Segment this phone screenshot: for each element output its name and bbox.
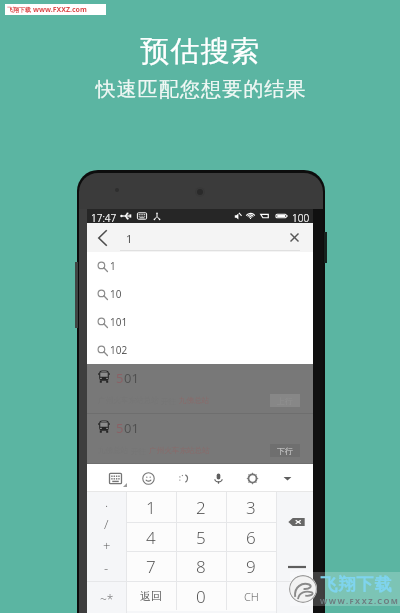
- staticText: /: [104, 515, 109, 533]
- staticText: .: [105, 493, 109, 511]
- staticText: 九佛总站: [179, 396, 210, 406]
- button[interactable]: 7: [126, 551, 176, 581]
- button[interactable]: 9: [226, 551, 276, 581]
- staticText: 101: [110, 315, 128, 329]
- staticText: 广州火车东站总站: [149, 446, 210, 456]
- staticText: +: [103, 537, 111, 555]
- button[interactable]: 返回: [126, 581, 176, 611]
- staticText: 5: [116, 419, 124, 434]
- staticText: WWW.FXXZ.COM: [320, 596, 400, 606]
- button[interactable]: 5: [176, 522, 226, 552]
- button[interactable]: 0: [176, 581, 226, 611]
- staticText: 3: [246, 496, 256, 519]
- button[interactable]: .: [87, 492, 126, 581]
- button[interactable]: Back: [87, 223, 313, 252]
- staticText: 返回: [140, 589, 162, 603]
- button[interactable]: Delete: [276, 492, 313, 551]
- staticText: 下行: [277, 446, 293, 456]
- button[interactable]: Space: [276, 551, 313, 613]
- staticText: 102: [110, 343, 128, 357]
- button[interactable]: 4: [126, 522, 176, 552]
- button[interactable]: 3: [226, 492, 276, 522]
- button[interactable]: Back: [90, 223, 114, 252]
- button[interactable]: 6: [226, 522, 276, 552]
- staticText: 9: [246, 555, 256, 578]
- staticText: 1: [110, 259, 116, 273]
- button[interactable]: Emoticon: [169, 465, 195, 492]
- button[interactable]: Voice input: [205, 465, 231, 492]
- button[interactable]: 2: [176, 492, 226, 522]
- staticText: 01: [124, 419, 139, 434]
- button[interactable]: CH: [226, 581, 276, 611]
- staticText: 4: [146, 526, 156, 549]
- staticText: 1: [126, 231, 133, 246]
- staticText: -: [104, 559, 109, 577]
- staticText: 快速匹配您想要的结果: [95, 77, 306, 102]
- button[interactable]: 1: [87, 252, 313, 280]
- staticText: 1: [146, 496, 156, 519]
- button[interactable]: Keyboard: [102, 465, 128, 492]
- button[interactable]: 10: [87, 280, 313, 308]
- staticText: 10: [110, 287, 122, 301]
- button[interactable]: Clear: [279, 223, 309, 252]
- button[interactable]: More: [274, 465, 300, 492]
- button[interactable]: 5: [87, 414, 313, 464]
- staticText: 6: [246, 526, 256, 549]
- staticText: 17:47: [91, 211, 117, 225]
- button[interactable]: Settings: [239, 465, 265, 492]
- staticText: 100: [292, 211, 310, 225]
- staticText: 8: [196, 555, 206, 578]
- button[interactable]: Emoji: [135, 465, 161, 492]
- button[interactable]: 1: [126, 492, 176, 522]
- staticText: 0: [196, 585, 206, 608]
- staticText: 01: [124, 369, 139, 384]
- staticText: ~*: [100, 591, 114, 607]
- staticText: 7: [146, 555, 156, 578]
- button[interactable]: 8: [176, 551, 226, 581]
- staticText: 2: [196, 496, 206, 519]
- staticText: 飞翔下载: [7, 6, 31, 14]
- staticText: www.FXXZ.com: [33, 5, 87, 15]
- staticText: 5: [196, 526, 206, 549]
- button[interactable]: 5: [87, 364, 313, 414]
- button[interactable]: 101: [87, 308, 313, 336]
- staticText: CH: [244, 589, 259, 604]
- staticText: 5: [116, 369, 124, 384]
- button[interactable]: 102: [87, 336, 313, 364]
- staticText: 飞翔下载: [320, 574, 392, 595]
- button[interactable]: ~*: [87, 581, 126, 613]
- staticText: 预估搜索: [140, 33, 260, 70]
